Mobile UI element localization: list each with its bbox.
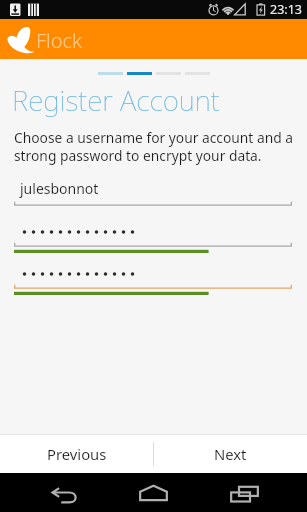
other: Flock logo xyxy=(7,26,34,53)
button[interactable]: julesbonnot xyxy=(14,181,292,215)
staticText: julesbonnot xyxy=(20,179,99,198)
button[interactable] xyxy=(14,222,292,256)
button[interactable]: Next xyxy=(154,435,307,473)
button[interactable]: Back xyxy=(40,473,88,512)
button[interactable]: Recent apps xyxy=(220,473,268,512)
staticText: Previous xyxy=(47,444,107,464)
staticText: Register Account xyxy=(12,81,220,119)
staticText: Flock xyxy=(36,27,82,54)
staticText: Next xyxy=(214,444,247,464)
button[interactable]: Home xyxy=(129,473,177,512)
button[interactable]: Previous xyxy=(0,435,153,473)
staticText: Choose a username for your account and a… xyxy=(14,128,307,165)
button[interactable] xyxy=(14,264,292,298)
staticText: 23:13 xyxy=(270,1,302,18)
